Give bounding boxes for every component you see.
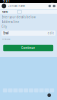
- button[interactable]: Profile: [2, 4, 6, 8]
- staticText: Terms apply: [2, 38, 11, 40]
- staticText: Contact name: [8, 4, 26, 8]
- staticText: Name: [2, 10, 9, 13]
- staticText: Email: [3, 31, 9, 35]
- staticText: ...: [51, 0, 54, 3]
- staticText: 9:41: [3, 0, 10, 3]
- staticText: edit: [48, 31, 54, 35]
- staticText: Address line: [2, 20, 20, 24]
- staticText: Continue: [21, 46, 35, 50]
- button[interactable]: Call: [49, 5, 51, 7]
- staticText: City: [2, 25, 7, 28]
- button[interactable]: More: [51, 5, 55, 7]
- staticText: Enter your details below: [2, 15, 36, 19]
- button[interactable]: Continue: [3, 45, 53, 51]
